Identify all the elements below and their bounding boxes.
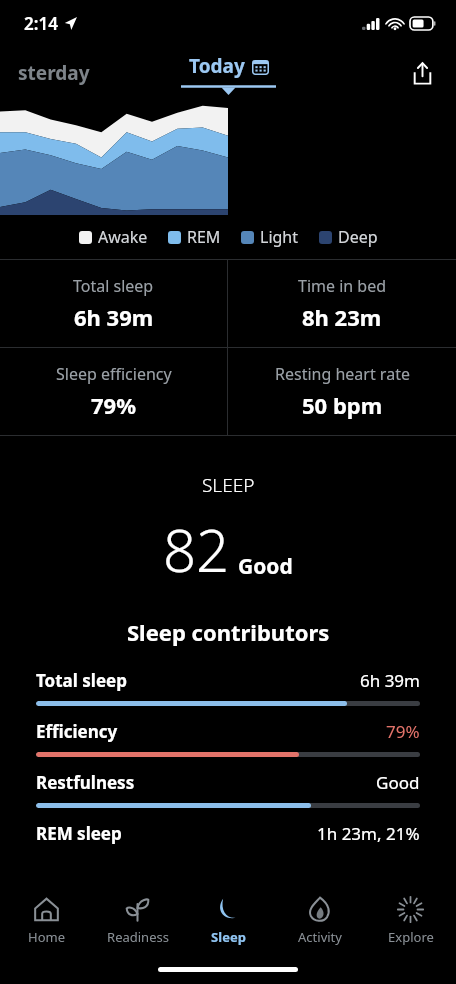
staticText: Sleep: [211, 928, 246, 946]
staticText: sterday: [18, 60, 90, 86]
staticText: Activity: [298, 928, 342, 946]
staticText: 8h 23m: [302, 302, 382, 332]
button[interactable]: Today: [181, 53, 276, 93]
staticText: 2:14: [24, 12, 58, 35]
staticText: 1h 23m, 21%: [317, 822, 420, 845]
staticText: REM: [187, 226, 221, 248]
staticText: Restfulness: [36, 771, 135, 794]
button[interactable]: Restfulness: [0, 771, 456, 822]
staticText: Sleep contributors: [127, 617, 330, 647]
button[interactable]: Resting heart rate: [228, 348, 456, 435]
button[interactable]: Time in bed: [228, 260, 456, 347]
staticText: REM sleep: [36, 822, 122, 845]
staticText: Sleep efficiency: [56, 363, 172, 385]
staticText: Readiness: [107, 928, 169, 946]
staticText: 82: [163, 510, 230, 589]
button[interactable]: REM sleep: [0, 822, 456, 845]
button[interactable]: sterday: [8, 54, 100, 92]
button[interactable]: Activity: [274, 888, 365, 954]
button[interactable]: Readiness: [92, 888, 183, 954]
staticText: 6h 39m: [360, 669, 420, 692]
button[interactable]: Home: [0, 888, 92, 954]
staticText: SLEEP: [202, 472, 255, 498]
button[interactable]: Total sleep: [0, 669, 456, 720]
staticText: Resting heart rate: [275, 363, 410, 385]
staticText: 6h 39m: [74, 302, 154, 332]
button[interactable]: Total sleep: [0, 260, 227, 347]
staticText: Deep: [338, 226, 378, 248]
button[interactable]: Sleep efficiency: [0, 348, 227, 435]
staticText: Good: [238, 552, 293, 581]
staticText: Home: [28, 928, 65, 946]
button[interactable]: Share: [403, 54, 442, 93]
staticText: Time in bed: [298, 275, 387, 297]
button[interactable]: Efficiency: [0, 720, 456, 771]
staticText: Efficiency: [36, 720, 118, 743]
staticText: Explore: [388, 928, 434, 946]
staticText: Total sleep: [73, 275, 154, 297]
staticText: Good: [376, 771, 420, 794]
button[interactable]: Sleep: [183, 888, 274, 954]
staticText: Today: [189, 53, 245, 79]
button[interactable]: Explore: [365, 888, 456, 954]
staticText: 50 bpm: [302, 390, 383, 420]
staticText: Light: [260, 226, 299, 248]
staticText: 79%: [386, 720, 420, 743]
staticText: Total sleep: [36, 669, 127, 692]
staticText: Awake: [98, 226, 148, 248]
staticText: 79%: [91, 390, 137, 420]
